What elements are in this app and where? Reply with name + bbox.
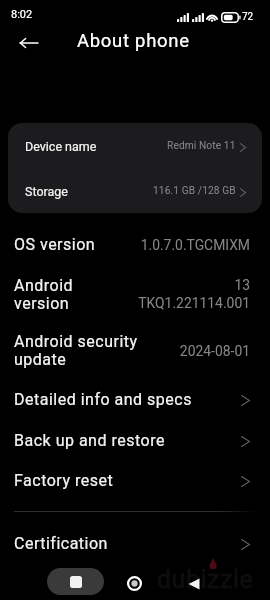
staticText: About phone (77, 30, 190, 52)
button[interactable]: Back up and restore (0, 420, 270, 460)
staticText: Factory reset (14, 471, 114, 490)
button[interactable]: Back (12, 29, 46, 57)
staticText: 1.0.7.0.TGCMIXM (140, 237, 250, 253)
staticText: 13 TKQ1.221114.001 (138, 277, 250, 312)
button[interactable]: Home (121, 570, 148, 597)
button[interactable]: OS version (0, 222, 270, 267)
staticText: Certification (14, 534, 108, 553)
button[interactable]: Android version (0, 267, 270, 322)
button[interactable]: Device name (8, 123, 262, 169)
button[interactable]: Android security update (0, 322, 270, 379)
button[interactable]: Back (180, 570, 207, 597)
button[interactable]: Factory reset (0, 460, 270, 500)
button[interactable]: Detailed info and specs (0, 379, 270, 420)
staticText: Storage (25, 184, 68, 199)
staticText: Android security update (14, 332, 173, 369)
staticText: 116.1 GB /128 GB (153, 185, 236, 197)
button[interactable]: Certification (0, 523, 270, 563)
button[interactable]: Storage (8, 169, 262, 213)
staticText: Detailed info and specs (14, 390, 192, 409)
staticText: OS version (14, 235, 134, 254)
staticText: 72 (242, 11, 254, 23)
staticText: dubizzle (157, 565, 254, 594)
staticText: Back up and restore (14, 431, 165, 450)
staticText: Android version (14, 276, 132, 313)
staticText: Device name (25, 139, 97, 154)
button[interactable]: Recents (47, 568, 104, 595)
staticText: 2024-08-01 (179, 343, 250, 359)
staticText: Redmi Note 11 (167, 140, 236, 152)
staticText: 8:02 (11, 8, 33, 21)
